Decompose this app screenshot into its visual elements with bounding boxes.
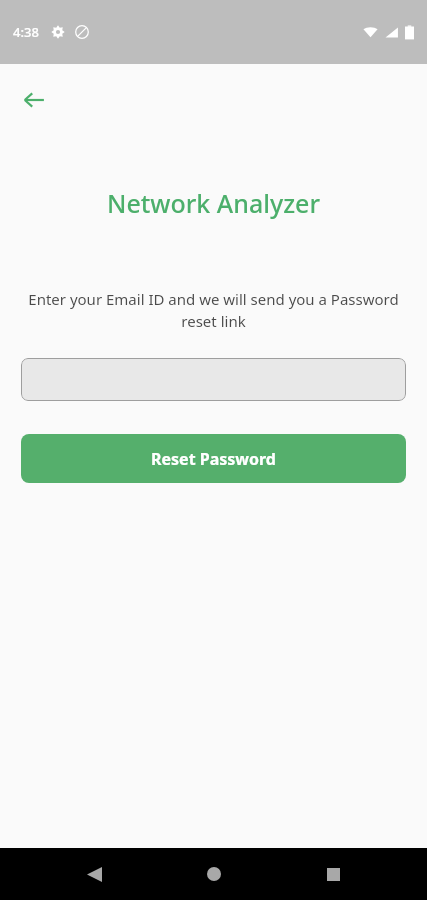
staticText: Enter your Email ID and we will send you… [26,289,401,332]
staticText: Network Analyzer [0,186,427,220]
button[interactable] [21,358,406,401]
button[interactable]: Back [12,78,56,122]
button[interactable]: Reset Password [21,434,406,483]
staticText: 4:38 [13,23,39,41]
button[interactable]: Recents [307,848,359,900]
staticText: Reset Password [151,448,276,470]
button[interactable]: Back [68,848,120,900]
button[interactable]: Home [188,848,240,900]
